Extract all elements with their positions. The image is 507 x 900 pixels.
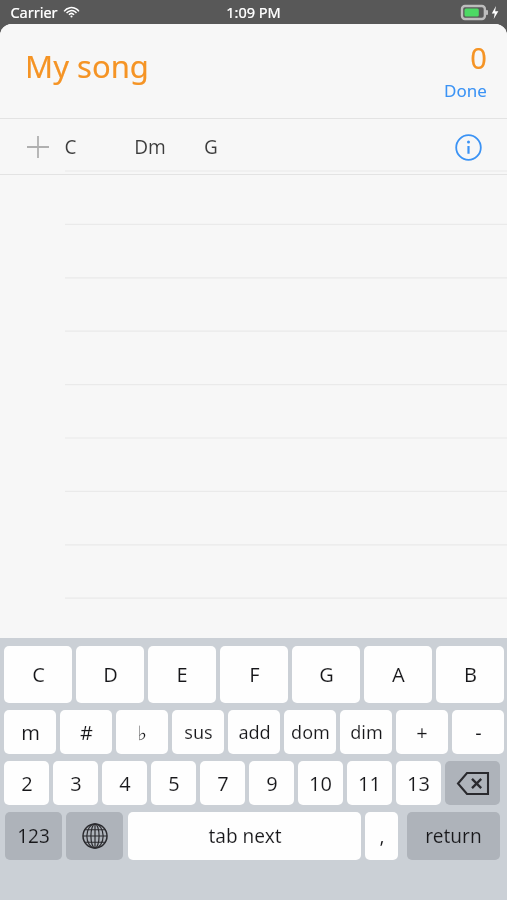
button[interactable]: G (204, 134, 218, 160)
staticText: 10 (309, 770, 332, 797)
staticText: 1:09 PM (226, 2, 281, 22)
button[interactable]: return (407, 812, 500, 860)
staticText: 2 (21, 770, 33, 797)
button[interactable]: Dm (134, 134, 166, 160)
staticText: 11 (358, 770, 381, 797)
button[interactable]: G (292, 646, 360, 703)
button[interactable]: 123 (5, 812, 62, 860)
staticText: G (319, 661, 334, 688)
button[interactable]: # (60, 710, 112, 754)
button[interactable]: + (396, 710, 448, 754)
button[interactable]: B (436, 646, 504, 703)
button[interactable]: My song (25, 45, 149, 87)
button[interactable]: 0 (470, 38, 487, 77)
button[interactable]: 9 (249, 761, 294, 805)
staticText: 0 (470, 38, 487, 77)
button[interactable]: C (4, 646, 72, 703)
staticText: # (80, 719, 93, 746)
button[interactable]: , (365, 812, 398, 860)
button[interactable]: Change keyboard (66, 812, 123, 860)
button[interactable]: 3 (53, 761, 98, 805)
button[interactable]: dom (284, 710, 336, 754)
button[interactable]: 7 (200, 761, 245, 805)
button[interactable]: 4 (102, 761, 147, 805)
staticText: A (392, 661, 405, 688)
button[interactable]: A (364, 646, 432, 703)
staticText: add (238, 720, 271, 745)
staticText: G (204, 134, 218, 160)
staticText: E (176, 661, 188, 688)
staticText: F (249, 661, 260, 688)
staticText: Done (444, 79, 487, 102)
button[interactable]: D (76, 646, 144, 703)
button[interactable]: 11 (347, 761, 392, 805)
button[interactable]: 2 (4, 761, 49, 805)
button[interactable]: m (4, 710, 56, 754)
button[interactable]: C (64, 134, 77, 160)
staticText: My song (25, 45, 149, 87)
staticText: B (464, 661, 477, 688)
button[interactable]: E (148, 646, 216, 703)
staticText: ♭ (137, 721, 147, 744)
button[interactable]: Add chord (22, 131, 54, 163)
button[interactable]: Backspace (445, 761, 500, 805)
staticText: return (425, 823, 482, 849)
button[interactable]: 10 (298, 761, 343, 805)
button[interactable]: add (228, 710, 280, 754)
staticText: dim (350, 720, 383, 745)
staticText: 7 (217, 770, 229, 797)
staticText: sus (184, 720, 213, 745)
button[interactable]: tab next (128, 812, 361, 860)
staticText: C (32, 661, 45, 688)
button[interactable]: 5 (151, 761, 196, 805)
staticText: Carrier (10, 2, 58, 22)
button[interactable]: ♭ (116, 710, 168, 754)
staticText: tab next (208, 823, 282, 849)
staticText: 13 (407, 770, 430, 797)
button[interactable]: Info (451, 130, 485, 164)
button[interactable]: - (452, 710, 504, 754)
staticText: C (64, 134, 77, 160)
staticText: 9 (266, 770, 278, 797)
staticText: 5 (168, 770, 180, 797)
button[interactable]: 13 (396, 761, 441, 805)
staticText: 4 (119, 770, 131, 797)
staticText: - (475, 719, 482, 746)
staticText: dom (291, 720, 330, 745)
button[interactable]: dim (340, 710, 392, 754)
staticText: 123 (17, 823, 50, 849)
button[interactable]: F (220, 646, 288, 703)
button[interactable]: sus (172, 710, 224, 754)
staticText: + (416, 719, 428, 746)
staticText: D (103, 661, 118, 688)
staticText: Dm (134, 134, 166, 160)
staticText: , (379, 823, 385, 849)
button[interactable]: Done (444, 79, 487, 102)
staticText: m (21, 719, 40, 746)
staticText: 3 (70, 770, 82, 797)
